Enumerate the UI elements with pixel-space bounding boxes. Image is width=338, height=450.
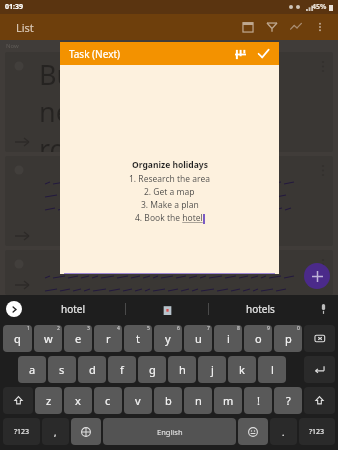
staticText: , <box>54 426 57 438</box>
button[interactable]: Backspace <box>304 325 335 352</box>
staticText: hotel <box>61 302 86 316</box>
button[interactable]: z <box>35 387 62 414</box>
button[interactable]: Filter <box>260 15 284 39</box>
button[interactable]: Emoji <box>238 418 268 445</box>
button[interactable] <box>5 156 333 246</box>
button[interactable]: Expand suggestions <box>6 301 22 317</box>
button[interactable]: Shift <box>304 387 335 414</box>
staticText: . <box>282 426 285 438</box>
staticText: 7 <box>207 325 210 332</box>
staticText: m <box>223 393 234 408</box>
button[interactable]: j <box>198 356 226 383</box>
button[interactable]: x <box>64 387 92 414</box>
staticText: Now <box>6 42 19 50</box>
button[interactable]: v <box>124 387 152 414</box>
button[interactable]: g <box>138 356 166 383</box>
staticText: ! <box>257 393 260 408</box>
staticText: s <box>59 362 65 377</box>
staticText: x <box>75 393 81 408</box>
staticText: f <box>120 362 124 377</box>
button[interactable]: Change language <box>71 418 101 445</box>
button[interactable]: c <box>94 387 122 414</box>
staticText: y <box>165 331 171 346</box>
staticText: l <box>271 362 274 377</box>
button[interactable]: d <box>78 356 106 383</box>
staticText: 3. Make a plan <box>141 199 199 211</box>
staticText: 9 <box>267 325 270 332</box>
button[interactable]: ?123 <box>299 418 335 445</box>
button[interactable]: Shift <box>3 387 33 414</box>
button[interactable]: Task options <box>229 43 251 65</box>
button[interactable]: a <box>18 356 46 383</box>
staticText: 4 <box>117 325 120 332</box>
staticText: 3 <box>87 325 90 332</box>
button[interactable]: b <box>154 387 182 414</box>
button[interactable]: q <box>3 325 32 352</box>
button[interactable]: Calendar <box>236 15 260 39</box>
staticText: List <box>16 20 34 35</box>
button[interactable]: f <box>108 356 136 383</box>
button[interactable]: Done <box>251 42 275 65</box>
staticText: English <box>157 427 183 437</box>
button[interactable]: p <box>274 325 302 352</box>
button[interactable]: e <box>64 325 92 352</box>
staticText: g <box>149 362 156 377</box>
staticText: 0 <box>297 325 300 332</box>
staticText: t <box>136 331 140 346</box>
button[interactable]: u <box>184 325 212 352</box>
staticText: u <box>195 331 202 346</box>
button[interactable]: n <box>184 387 212 414</box>
staticText: 8 <box>237 325 240 332</box>
staticText: 4. Book the hotel <box>135 212 203 224</box>
staticText: e <box>75 331 82 346</box>
button[interactable]: r <box>94 325 122 352</box>
staticText: d <box>89 362 96 377</box>
staticText: ?123 <box>309 427 325 437</box>
staticText: 2. Get a map <box>144 186 195 198</box>
button[interactable]: . <box>270 418 297 445</box>
staticText: a <box>29 362 36 377</box>
staticText: 6 <box>177 325 180 332</box>
button[interactable]: m <box>214 387 242 414</box>
staticText: 1. Research the area <box>129 173 210 185</box>
staticText: Task (Next) <box>69 47 121 61</box>
staticText: 45% <box>312 2 327 12</box>
button[interactable]: More options <box>308 15 332 39</box>
staticText: n <box>195 393 202 408</box>
button[interactable]: Buy <box>5 52 333 152</box>
button[interactable]: t <box>124 325 152 352</box>
staticText: new <box>39 93 92 130</box>
staticText: b <box>165 393 172 408</box>
button[interactable]: English <box>103 418 236 445</box>
button[interactable]: w <box>34 325 62 352</box>
staticText: 01:39 <box>5 2 23 12</box>
button[interactable]: hotels <box>209 295 312 323</box>
button[interactable]: Statistics <box>284 15 308 39</box>
button[interactable]: k <box>228 356 256 383</box>
button[interactable]: hotel <box>22 295 125 323</box>
button[interactable]: Voice input <box>312 298 334 320</box>
staticText: j <box>211 362 214 377</box>
button[interactable]: ?123 <box>3 418 40 445</box>
button[interactable]: h <box>168 356 196 383</box>
staticText: Organize holidays <box>132 159 208 171</box>
staticText: w <box>44 331 53 346</box>
staticText: z <box>46 393 52 408</box>
button[interactable]: ! <box>244 387 272 414</box>
button[interactable] <box>5 250 333 295</box>
staticText: h <box>179 362 186 377</box>
button[interactable]: , <box>42 418 69 445</box>
button[interactable]: Add <box>304 263 330 289</box>
button[interactable]: ? <box>274 387 302 414</box>
button[interactable]: s <box>48 356 76 383</box>
button[interactable]: y <box>154 325 182 352</box>
staticText: o <box>255 331 262 346</box>
staticText: Buy <box>39 56 88 93</box>
button[interactable]: l <box>258 356 286 383</box>
button[interactable]: Enter <box>304 356 335 383</box>
button[interactable]: i <box>214 325 242 352</box>
button[interactable]: Hotel emoji <box>126 295 208 323</box>
staticText: 1 <box>27 325 30 332</box>
staticText: q <box>14 331 21 346</box>
button[interactable]: o <box>244 325 272 352</box>
